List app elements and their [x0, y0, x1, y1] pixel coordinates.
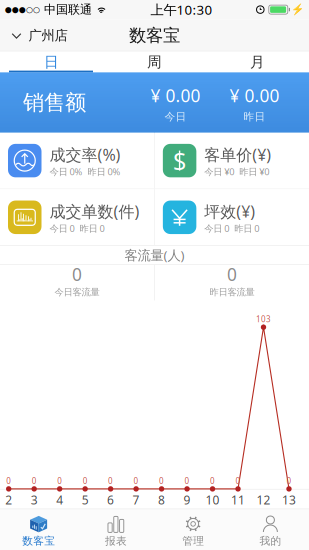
staticText: 昨日 0: [234, 222, 259, 234]
staticText: 销售额: [23, 89, 86, 116]
staticText: 8: [158, 492, 165, 508]
staticText: 成交单数(件): [49, 201, 139, 222]
staticText: S: [173, 145, 186, 177]
staticText: 0: [6, 476, 11, 486]
staticText: 103: [256, 314, 271, 324]
staticText: 我的: [259, 534, 281, 547]
staticText: 3: [31, 492, 38, 508]
staticText: 今日 0: [49, 222, 74, 234]
button[interactable]: 周: [103, 52, 206, 73]
button[interactable]: 月: [206, 52, 309, 73]
staticText: 昨日客流量: [209, 286, 254, 298]
staticText: 成交率(%): [49, 144, 120, 165]
button[interactable]: 日: [0, 52, 103, 73]
staticText: 数客宝: [22, 534, 55, 547]
staticText: 12: [256, 492, 270, 508]
staticText: 5: [82, 492, 89, 508]
staticText: 0: [72, 263, 82, 286]
staticText: 10: [205, 492, 219, 508]
staticText: 7: [133, 492, 140, 508]
button[interactable]: 成交率(%): [0, 133, 154, 189]
staticText: 上午10:30: [150, 1, 212, 18]
staticText: 周: [147, 53, 162, 71]
button[interactable]: 数客宝: [0, 509, 77, 550]
staticText: 0: [286, 476, 291, 486]
staticText: 广州店: [28, 27, 67, 44]
staticText: ●●●○○: [5, 5, 40, 14]
staticText: 今日 ¥0: [204, 165, 234, 178]
staticText: 11: [231, 492, 245, 508]
staticText: 4: [56, 492, 63, 508]
button[interactable]: 报表: [77, 509, 154, 550]
staticText: 今日 0%: [49, 165, 82, 178]
staticText: 数客宝: [129, 25, 180, 46]
button[interactable]: 成交单数(件): [0, 189, 154, 245]
button[interactable]: S: [155, 133, 309, 189]
staticText: 0: [185, 476, 190, 486]
staticText: 今日客流量: [55, 286, 100, 298]
staticText: 0: [210, 476, 215, 486]
button[interactable]: 我的: [232, 509, 309, 550]
staticText: 今日: [164, 110, 186, 123]
staticText: 中国联通: [40, 2, 96, 17]
staticText: 0: [227, 263, 237, 286]
staticText: 昨日 0%: [87, 165, 120, 178]
staticText: ¥ 0.00: [229, 84, 279, 107]
staticText: ¥ 0.00: [150, 84, 200, 107]
staticText: 日: [44, 53, 59, 71]
staticText: 报表: [105, 534, 127, 547]
staticText: 客流量(人): [124, 246, 184, 264]
staticText: 管理: [182, 534, 204, 547]
staticText: 客单价(¥): [204, 144, 271, 165]
staticText: 6: [107, 492, 114, 508]
staticText: 2: [5, 492, 12, 508]
staticText: 0: [32, 476, 37, 486]
staticText: 0: [235, 476, 240, 486]
button[interactable]: 广州店: [0, 20, 75, 51]
staticText: 13: [282, 492, 296, 508]
staticText: 0: [134, 476, 139, 486]
button[interactable]: 管理: [154, 509, 232, 550]
staticText: 今日 0: [204, 222, 229, 234]
staticText: 昨日: [243, 110, 265, 123]
staticText: 0: [57, 476, 62, 486]
button[interactable]: 坪效(¥): [155, 189, 309, 245]
staticText: ⚡: [291, 3, 304, 16]
staticText: 昨日 ¥0: [239, 165, 269, 178]
staticText: 9: [184, 492, 191, 508]
staticText: 月: [250, 53, 265, 71]
staticText: 0: [108, 476, 113, 486]
staticText: 0: [83, 476, 88, 486]
staticText: 坪效(¥): [204, 201, 255, 222]
staticText: 昨日 0: [79, 222, 104, 234]
staticText: 0: [159, 476, 164, 486]
